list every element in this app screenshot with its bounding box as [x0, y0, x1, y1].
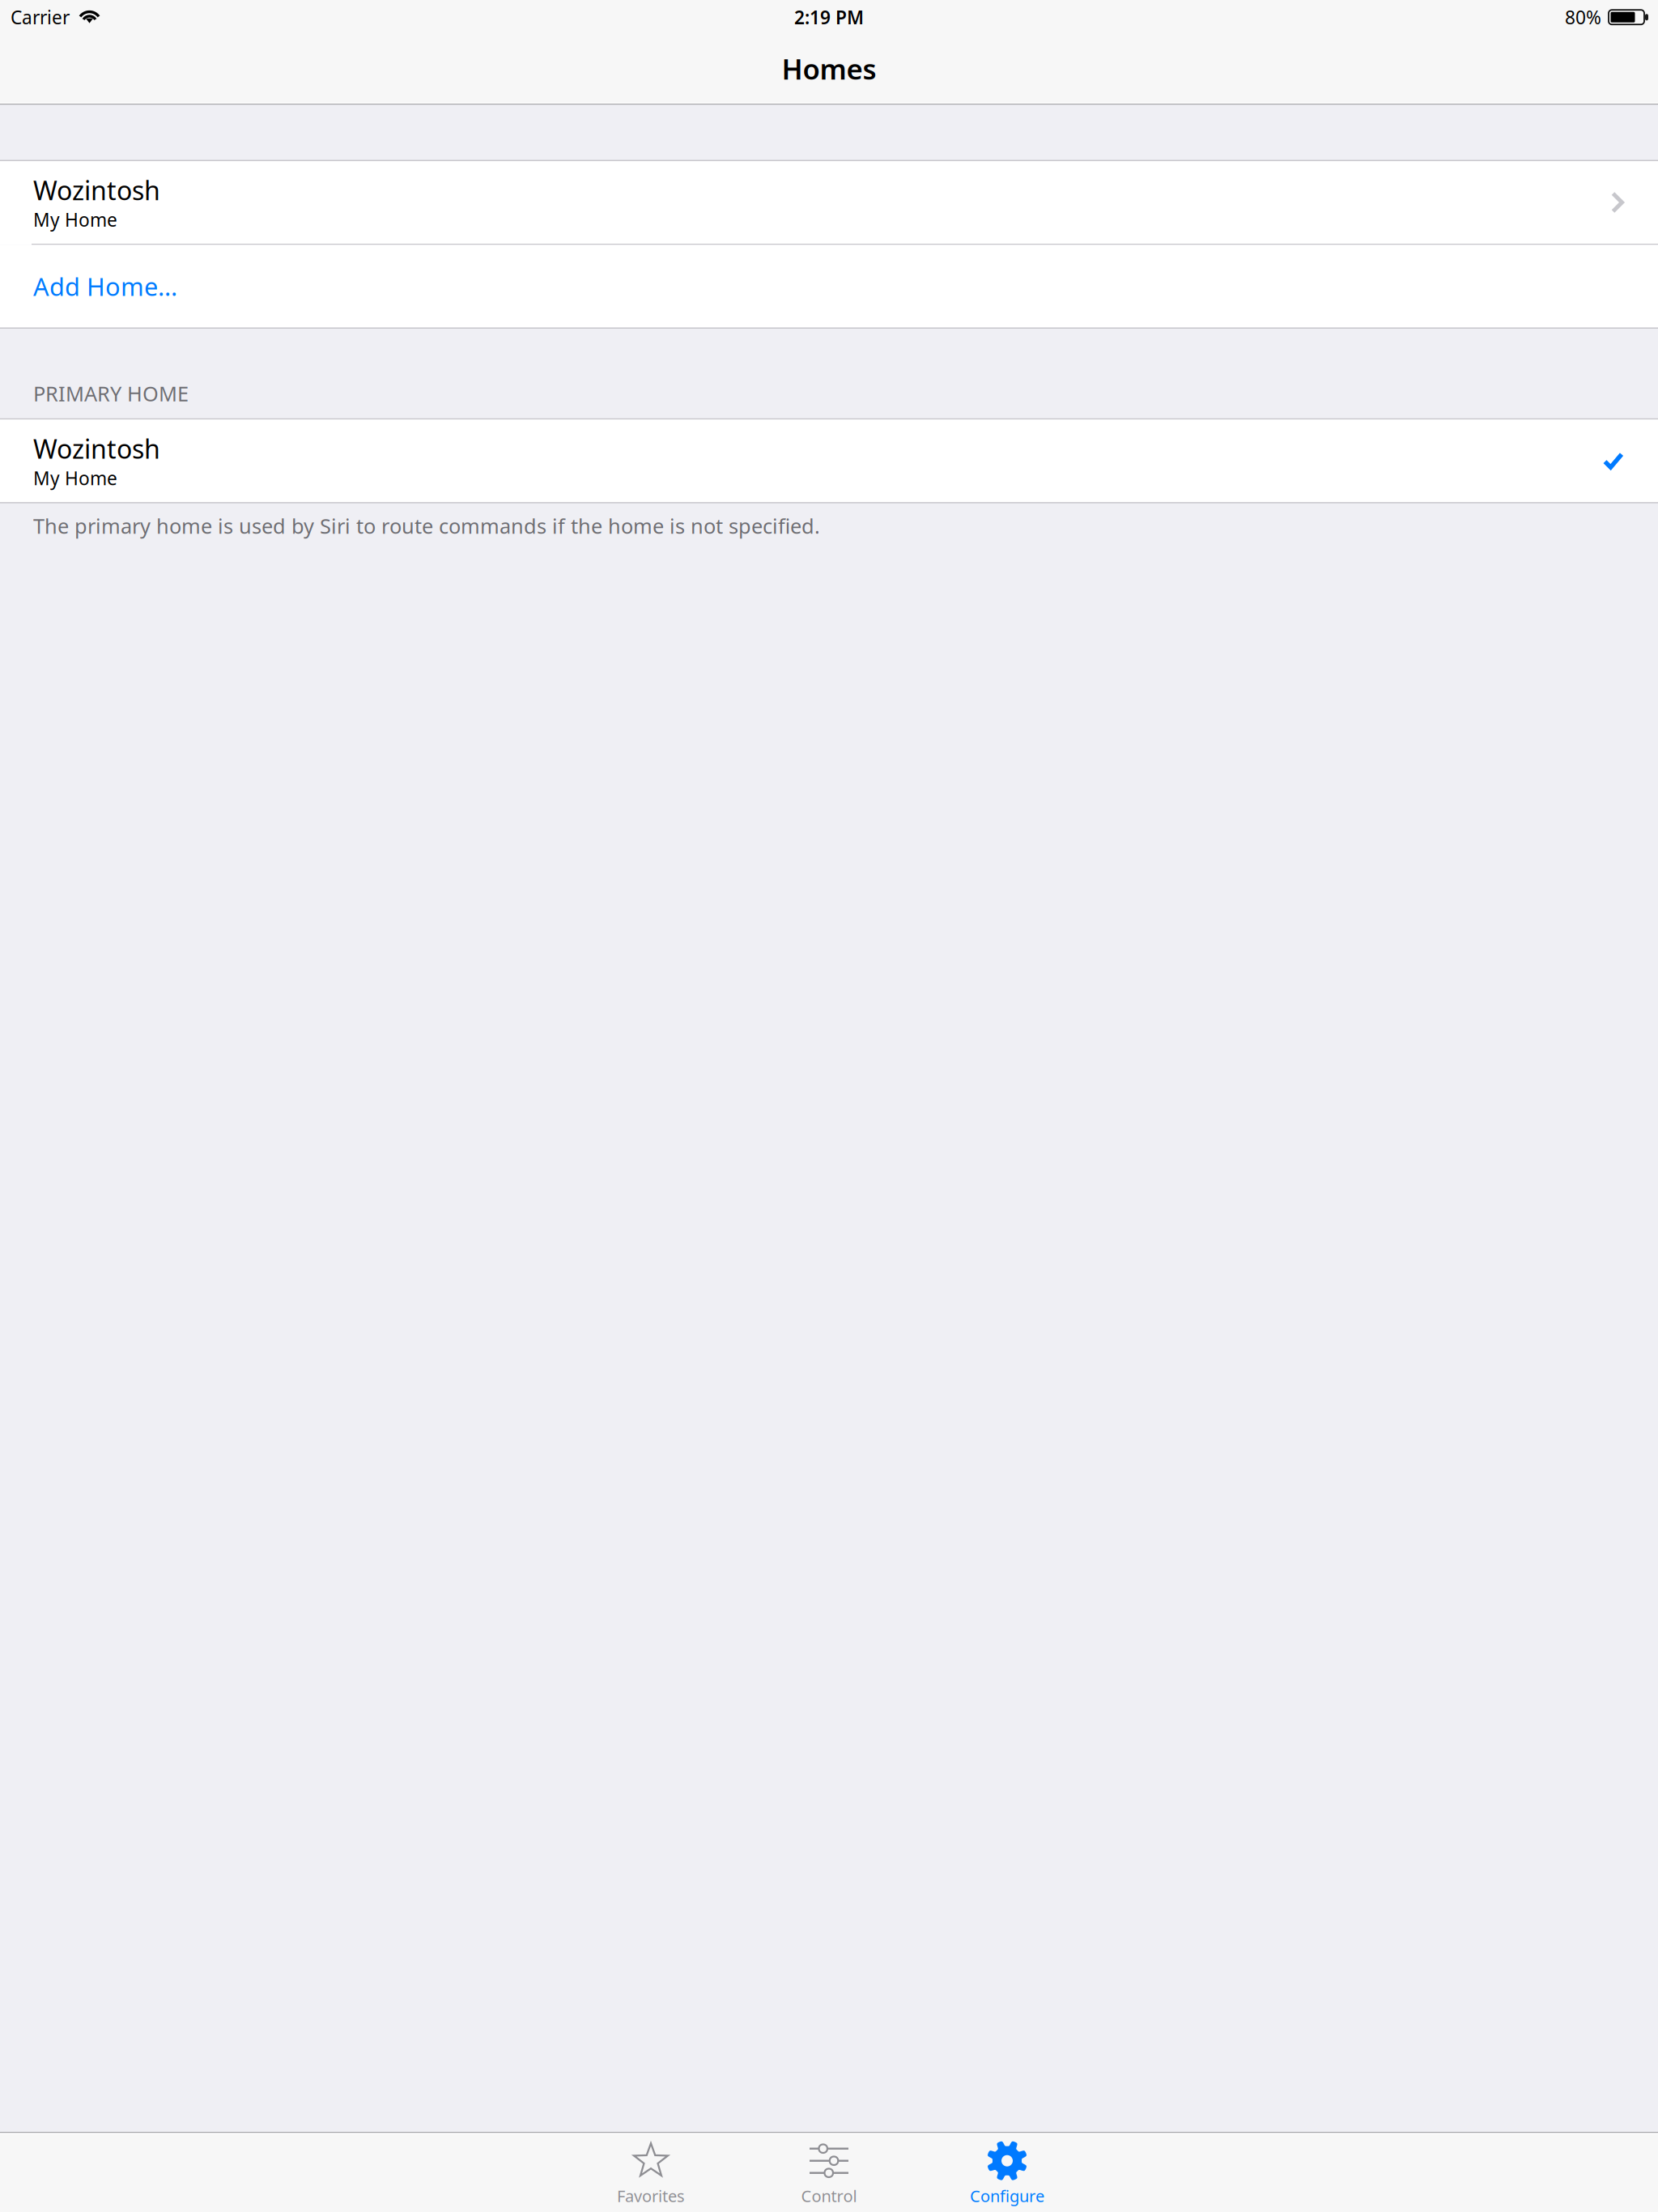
staticText: Wozintosh [33, 173, 160, 207]
button[interactable]: Wozintosh [0, 419, 1658, 502]
staticText: My Home [33, 466, 117, 490]
button[interactable]: Configure [918, 2132, 1096, 2212]
staticText: Homes [782, 50, 876, 87]
staticText: The primary home is used by Siri to rout… [33, 512, 820, 539]
staticText: PRIMARY HOME [33, 380, 189, 407]
button[interactable]: Add Home... [0, 245, 1658, 328]
button[interactable]: Favorites [562, 2132, 740, 2212]
staticText: My Home [33, 207, 117, 232]
button[interactable]: Wozintosh [0, 161, 1658, 244]
staticText: Add Home... [33, 270, 177, 303]
button[interactable]: Control [740, 2132, 918, 2212]
staticText: 2:19 PM [794, 5, 864, 29]
staticText: 80% [1565, 5, 1601, 29]
staticText: Configure [970, 2185, 1044, 2207]
staticText: Carrier [11, 5, 70, 29]
staticText: Control [801, 2185, 857, 2207]
staticText: Favorites [617, 2185, 685, 2207]
staticText: Wozintosh [33, 431, 160, 466]
